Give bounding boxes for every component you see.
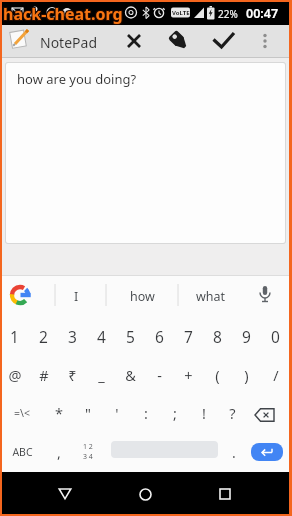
staticText: _ [98,365,105,385]
staticText: 7 [184,326,193,347]
button[interactable]: I [55,276,97,317]
staticText: how are you doing? [17,70,137,88]
button[interactable]: 7 [174,317,203,356]
button[interactable]: how are you doing? [6,63,285,243]
staticText: hack-cheat.org [2,2,122,24]
staticText: / [273,365,279,385]
staticText: VoLTE [172,9,190,17]
staticText: hack-cheat.org [3,3,123,25]
staticText: # [39,365,49,385]
button[interactable]: * [44,394,73,432]
button[interactable]: ' [102,394,131,432]
staticText: . [232,443,236,462]
staticText: : [144,403,148,423]
staticText: , [57,443,61,462]
button[interactable]: 9 [232,317,261,356]
staticText: + [184,365,193,385]
button[interactable]: 4 [87,317,116,356]
staticText: @ [8,365,22,385]
button[interactable]: 6 [145,317,174,356]
button[interactable]: 8 [203,317,232,356]
staticText: " [85,403,91,423]
button[interactable] [105,472,185,516]
button[interactable] [211,25,239,57]
button[interactable] [248,432,292,472]
button[interactable] [120,25,148,57]
button[interactable] [25,472,105,516]
staticText: 3 4 [83,452,93,462]
staticText: 6 [155,326,164,347]
button[interactable]: 1 [0,317,29,356]
button[interactable]: 1 2 [73,432,102,472]
staticText: NotePad [40,33,97,52]
button[interactable]: _ [87,356,116,394]
button[interactable]: . [219,432,248,472]
staticText: 00:47 [246,5,279,22]
button[interactable] [185,472,265,516]
button[interactable]: @ [0,356,29,394]
button[interactable]: , [44,432,73,472]
staticText: 1 [10,326,19,347]
button[interactable]: ? [218,394,247,432]
button[interactable] [102,432,219,472]
staticText: what [196,288,226,305]
staticText: ! [202,403,206,423]
staticText: ) [244,365,249,385]
button[interactable]: & [116,356,145,394]
button[interactable]: + [174,356,203,394]
staticText: how [130,288,155,305]
staticText: 3 [68,326,77,347]
staticText: 4 [97,326,106,347]
staticText: =\< [14,406,30,420]
staticText: 2 [39,326,48,347]
button[interactable]: how [106,276,178,317]
button[interactable] [164,25,192,57]
button[interactable] [247,394,291,432]
staticText: & [125,365,136,385]
staticText: ABC [12,445,33,459]
staticText: I [74,288,79,305]
button[interactable]: ! [189,394,218,432]
button[interactable] [0,276,55,317]
staticText: 22% [218,7,238,21]
button[interactable]: 2 [29,317,58,356]
staticText: ₹ [68,365,77,385]
staticText: hack-cheat.org [2,4,122,26]
button[interactable]: ; [160,394,189,432]
staticText: * [55,403,63,423]
button[interactable]: 5 [116,317,145,356]
button[interactable]: " [73,394,102,432]
button[interactable] [250,276,282,317]
button[interactable]: 0 [261,317,290,356]
button[interactable]: ABC [0,432,44,472]
button[interactable] [256,25,274,57]
staticText: 0 [271,326,280,347]
staticText: ' [115,403,119,423]
button[interactable]: ) [232,356,261,394]
staticText: ; [173,403,177,423]
button[interactable]: ₹ [58,356,87,394]
staticText: 1 2 [83,442,93,452]
staticText: - [157,365,162,385]
staticText: ( [215,365,220,385]
staticText: 9 [242,326,251,347]
button[interactable]: - [145,356,174,394]
button[interactable]: 3 [58,317,87,356]
staticText: 8 [213,326,222,347]
staticText: 5 [126,326,135,347]
staticText: hack-cheat.org [4,4,124,26]
button[interactable]: what [178,276,244,317]
button[interactable]: =\< [0,394,44,432]
button[interactable]: : [131,394,160,432]
button[interactable]: ( [203,356,232,394]
staticText: hack-cheat.org [4,2,124,24]
button[interactable]: # [29,356,58,394]
staticText: ? [229,403,236,423]
button[interactable]: / [261,356,290,394]
